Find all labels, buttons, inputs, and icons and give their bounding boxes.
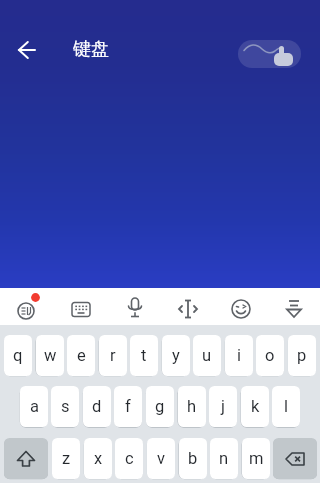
button[interactable] [267, 288, 320, 325]
button[interactable]: k [241, 386, 269, 427]
button[interactable] [0, 288, 54, 325]
button[interactable] [214, 288, 267, 325]
staticText: u [202, 346, 212, 365]
button[interactable]: u [193, 335, 221, 376]
staticText: r [110, 346, 116, 365]
button[interactable]: t [130, 335, 158, 376]
button[interactable] [161, 288, 214, 325]
button[interactable]: b [179, 438, 207, 479]
staticText: y [172, 346, 180, 365]
button[interactable]: v [147, 438, 175, 479]
button[interactable] [273, 438, 317, 479]
button[interactable]: s [51, 386, 79, 427]
staticText: s [61, 397, 70, 416]
button[interactable]: a [20, 386, 48, 427]
staticText: o [265, 346, 275, 365]
button[interactable]: y [162, 335, 190, 376]
staticText: q [13, 346, 23, 365]
staticText: c [125, 449, 134, 468]
button[interactable]: h [178, 386, 206, 427]
staticText: z [62, 449, 71, 468]
staticText: k [251, 397, 260, 416]
button[interactable]: z [52, 438, 80, 479]
staticText: d [92, 397, 102, 416]
button[interactable]: o [256, 335, 284, 376]
button[interactable]: q [4, 335, 32, 376]
button[interactable]: f [114, 386, 142, 427]
staticText: g [155, 397, 165, 416]
button[interactable]: n [210, 438, 238, 479]
button[interactable]: d [83, 386, 111, 427]
staticText: p [297, 346, 307, 365]
staticText: v [157, 449, 165, 468]
staticText: 键盘 [73, 38, 109, 61]
staticText: m [249, 449, 264, 468]
button[interactable]: i [225, 335, 253, 376]
button[interactable]: w [36, 335, 64, 376]
staticText: w [44, 346, 57, 365]
button[interactable]: x [84, 438, 112, 479]
button[interactable]: e [67, 335, 95, 376]
button[interactable]: r [99, 335, 127, 376]
staticText: a [30, 397, 39, 416]
button[interactable] [108, 288, 161, 325]
button[interactable] [238, 40, 301, 68]
button[interactable]: g [146, 386, 174, 427]
staticText: f [125, 397, 131, 416]
staticText: h [187, 397, 197, 416]
staticText: j [221, 397, 225, 416]
button[interactable]: c [115, 438, 143, 479]
staticText: i [237, 346, 242, 365]
staticText: n [219, 449, 229, 468]
staticText: b [188, 449, 198, 468]
button[interactable] [4, 438, 48, 479]
staticText: x [94, 449, 103, 468]
button[interactable] [54, 288, 108, 325]
button[interactable]: p [288, 335, 316, 376]
staticText: l [284, 397, 289, 416]
button[interactable]: j [209, 386, 237, 427]
button[interactable] [12, 35, 42, 65]
button[interactable]: l [272, 386, 300, 427]
button[interactable]: m [242, 438, 270, 479]
staticText: e [77, 346, 86, 365]
staticText: t [141, 346, 147, 365]
